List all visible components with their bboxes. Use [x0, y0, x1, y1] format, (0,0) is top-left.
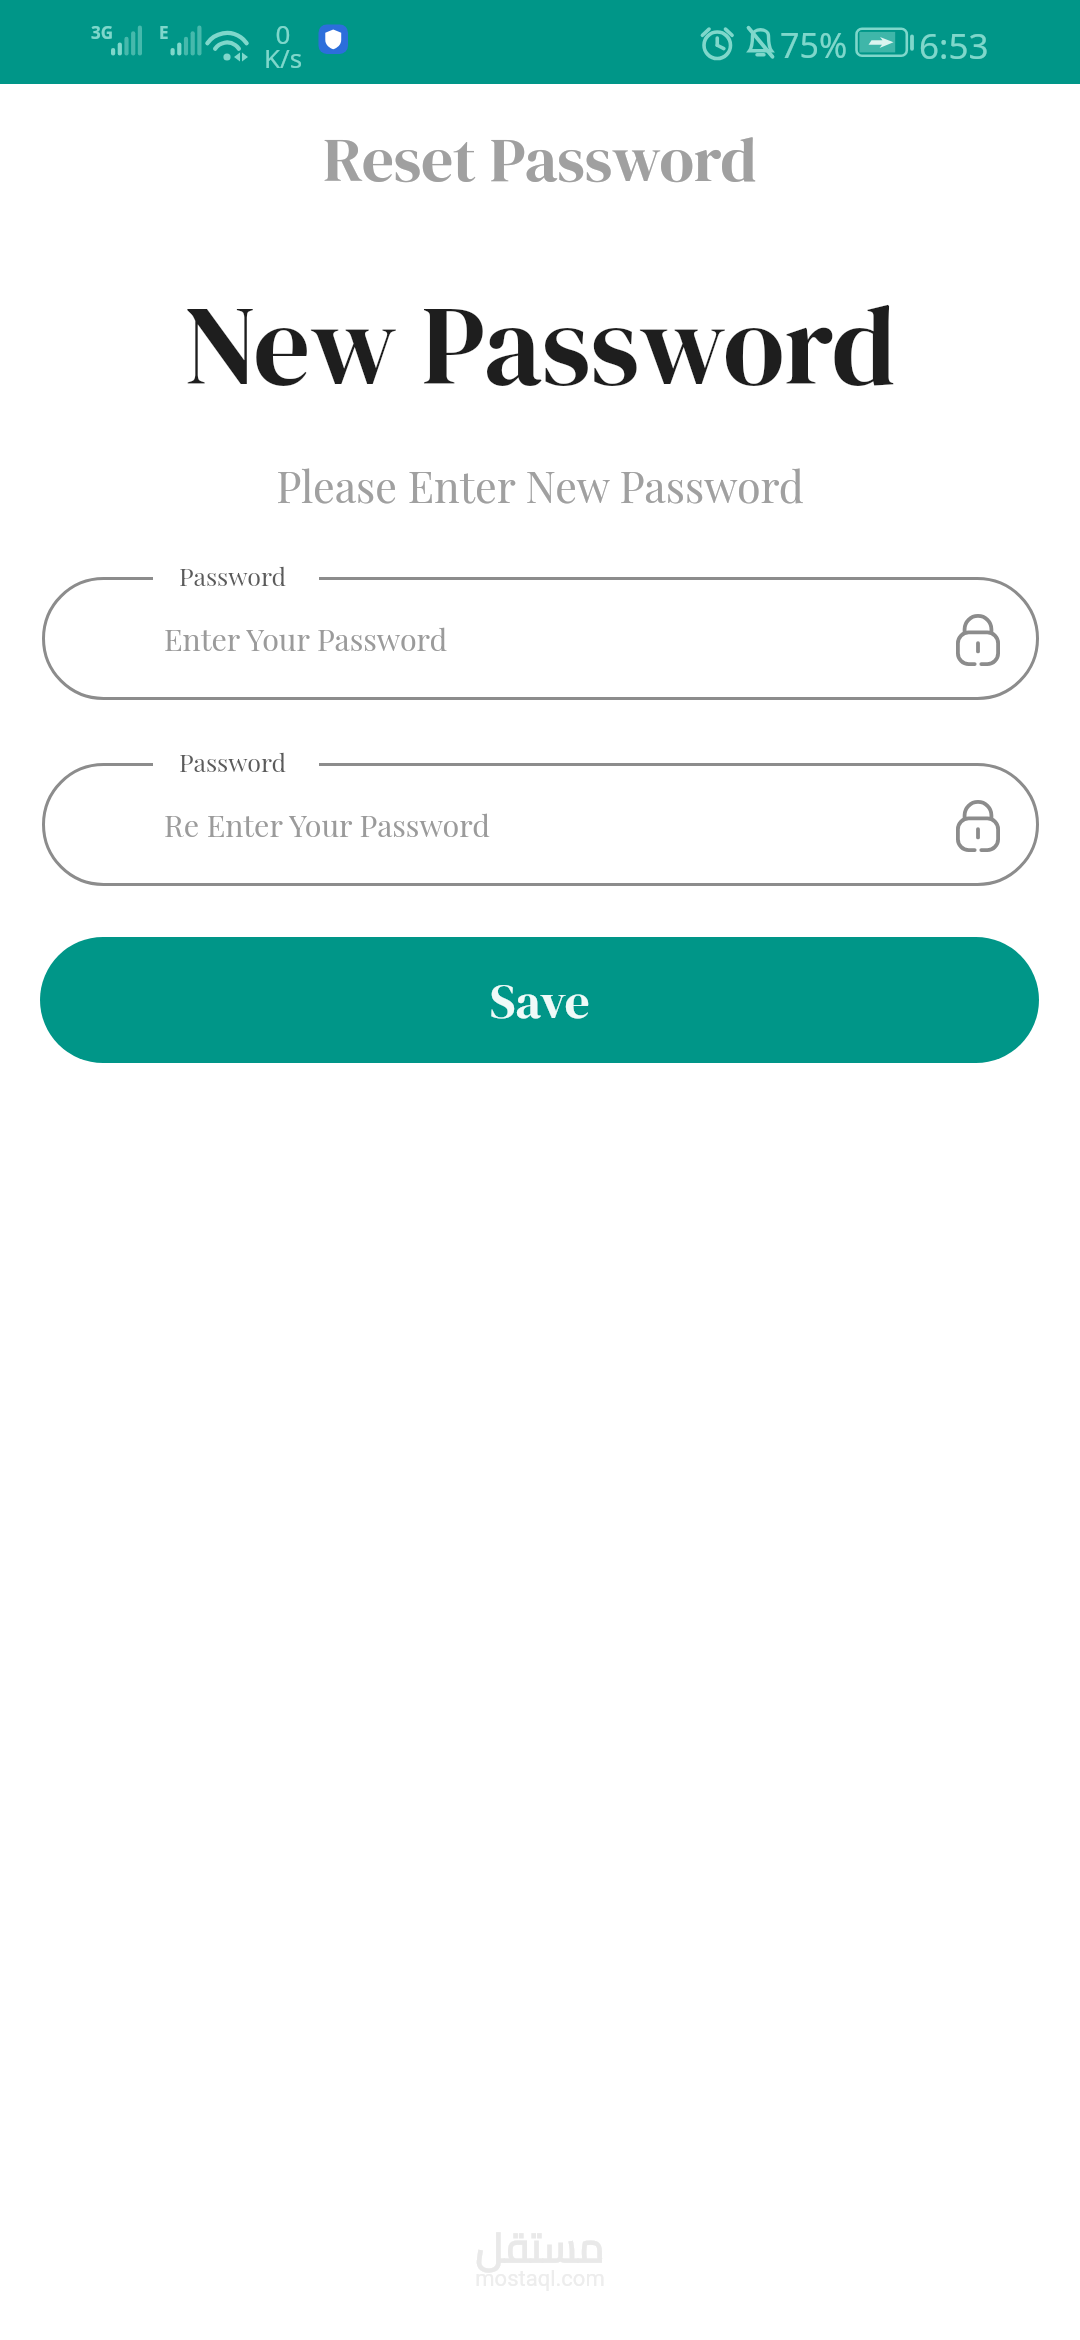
button[interactable]: Toggle password visibility: [956, 800, 1000, 852]
staticText: Please Enter New Password: [0, 456, 1080, 513]
staticText: Enter Your Password: [164, 618, 448, 659]
staticText: Password: [179, 745, 287, 778]
staticText: K/s: [261, 40, 305, 75]
staticText: New Password: [0, 268, 1080, 422]
staticText: Reset Password: [0, 116, 1080, 202]
button[interactable]: Save: [40, 937, 1039, 1063]
staticText: 6:53: [919, 22, 989, 70]
staticText: 0: [261, 16, 305, 51]
button[interactable]: Password: [42, 577, 1039, 700]
staticText: 3G: [91, 21, 114, 44]
staticText: 75%: [780, 22, 848, 68]
staticText: Password: [179, 559, 287, 592]
staticText: mostaql.com: [420, 2266, 660, 2292]
button[interactable]: Toggle password visibility: [956, 614, 1000, 666]
staticText: مستقل: [420, 2209, 660, 2286]
staticText: E: [159, 21, 169, 44]
staticText: Re Enter Your Password: [164, 804, 490, 845]
button[interactable]: Password: [42, 763, 1039, 886]
staticText: Save: [490, 967, 590, 1034]
